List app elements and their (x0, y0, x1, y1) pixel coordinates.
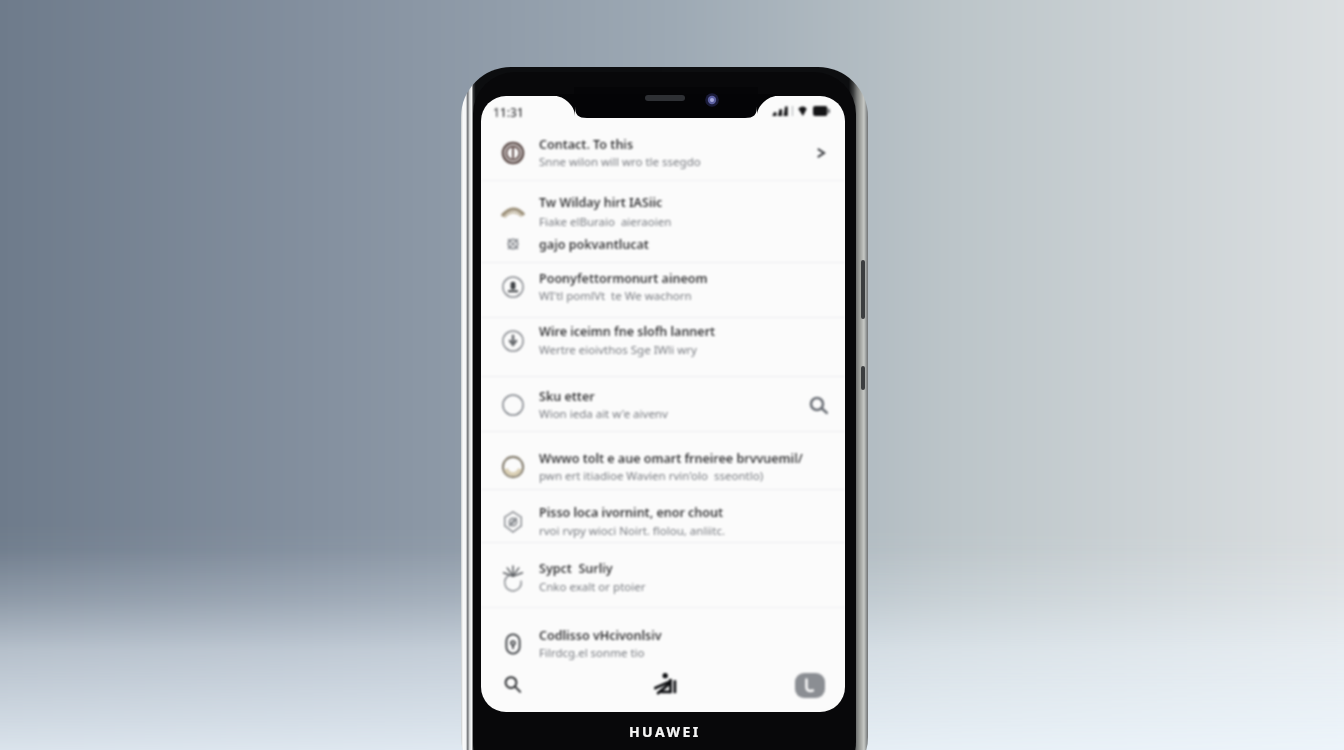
staticText: WI'tl pomlVt te We wachorn (539, 288, 827, 304)
staticText: gajo pokvantlucat (539, 236, 819, 253)
staticText: Codlisso vHcivonlsiv (539, 627, 819, 644)
staticText: Wire iceimn fne slofh lannert (539, 323, 819, 340)
button[interactable] (481, 431, 845, 489)
button[interactable] (481, 317, 845, 376)
button[interactable] (481, 262, 845, 317)
button[interactable] (481, 489, 845, 542)
staticText: pwn ert itiadioe Wavien rvin'olo sseontl… (539, 468, 827, 484)
other: More (808, 395, 828, 415)
staticText: Cnko exalt or ptoier (539, 579, 827, 595)
staticText: HUAWEI (629, 722, 701, 741)
button[interactable]: People (642, 661, 686, 705)
button[interactable] (481, 180, 845, 233)
staticText: Pisso loca ivornint, enor chout (539, 504, 819, 521)
button[interactable] (481, 607, 845, 666)
staticText: Fiake elBuraio aieraoien (539, 214, 827, 230)
staticText: Contact. To this (539, 136, 819, 153)
button[interactable]: Search (491, 663, 535, 707)
staticText: Snne wilon will wro tle ssegdo (539, 154, 827, 170)
staticText: Poonyfettormonurt aineom (539, 270, 819, 287)
staticText: Wertre eioivthos Sge IWli wry (539, 342, 827, 358)
button[interactable] (481, 376, 845, 431)
button[interactable] (481, 124, 845, 180)
staticText: 11:31 (493, 104, 524, 120)
staticText: Sypct Surliy (539, 560, 819, 577)
staticText: Filrdcg.el sonme tio (539, 645, 827, 661)
staticText: Wwwo tolt e aue omart frneiree brvvuemil… (539, 450, 819, 467)
button[interactable] (481, 542, 845, 607)
other: Open (814, 146, 828, 160)
button[interactable] (481, 233, 845, 262)
staticText: rvoi rvpy wioci Noirt. flolou, anliitc. (539, 523, 827, 539)
staticText: Tw Wilday hirt IASiic (539, 194, 819, 211)
staticText: Wion ieda ait w'e aivenv (539, 406, 827, 422)
staticText: Sku etter (539, 388, 819, 405)
button[interactable]: Messages (788, 663, 832, 707)
